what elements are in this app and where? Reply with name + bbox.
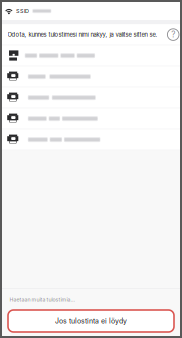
- button[interactable]: Printer: [2, 129, 180, 150]
- staticText: SSID: [16, 8, 29, 14]
- staticText: Odota, kunnes tulostimesi nimi näkyy, ja…: [7, 31, 157, 38]
- button[interactable]: Printer: [2, 87, 180, 108]
- staticText: ?: [171, 30, 175, 40]
- staticText: Jos tulostinta ei löydy: [55, 317, 127, 325]
- button[interactable]: Printer: [2, 66, 180, 87]
- button[interactable]: Jos tulostinta ei löydy: [8, 310, 174, 332]
- button[interactable]: Printer: [2, 45, 180, 66]
- button[interactable]: Help: [167, 29, 179, 40]
- button[interactable]: Printer: [2, 108, 180, 129]
- staticText: Haetaan muita tulostimia…: [9, 296, 74, 303]
